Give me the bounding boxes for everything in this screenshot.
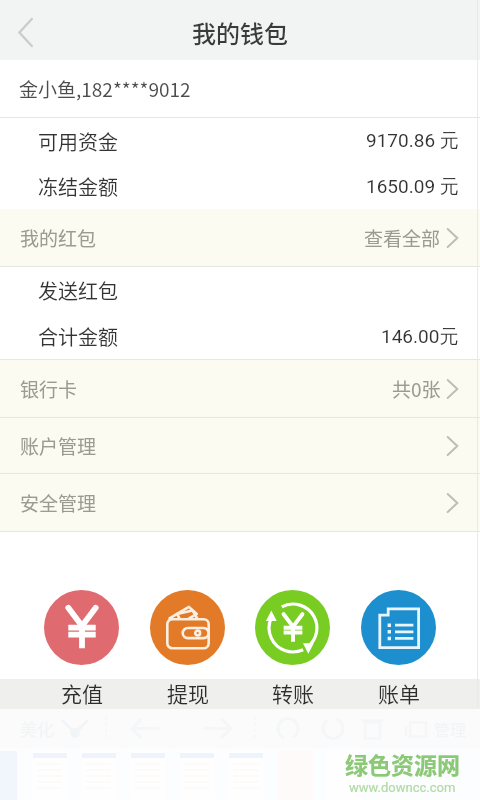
button[interactable]: 冻结金额: [0, 164, 480, 209]
button[interactable]: 合计金额: [0, 313, 480, 360]
button[interactable]: Transfer: [240, 590, 345, 708]
button[interactable]: Bills: [346, 590, 451, 708]
staticText: 146.00元: [381, 325, 459, 349]
button[interactable]: Back: [0, 6, 49, 55]
staticText: 发送红包: [38, 276, 118, 305]
button[interactable]: Recharge: [29, 590, 134, 708]
staticText: 9170.86 元: [366, 129, 459, 153]
staticText: 账单: [378, 678, 420, 708]
button[interactable]: 账户管理: [0, 418, 480, 474]
staticText: 账户管理: [20, 432, 97, 460]
staticText: 查看全部: [364, 224, 441, 252]
staticText: 充值: [61, 678, 103, 708]
staticText: 共0张: [392, 375, 441, 403]
staticText: www.downcc.com: [349, 780, 456, 795]
staticText: 1650.09 元: [366, 175, 459, 199]
staticText: 合计金额: [38, 322, 118, 351]
button[interactable]: 我的红包: [0, 209, 480, 267]
button[interactable]: 安全管理: [0, 474, 480, 532]
button[interactable]: Withdraw: [135, 590, 240, 708]
staticText: 提现: [167, 678, 209, 708]
staticText: 可用资金: [38, 127, 118, 156]
staticText: 金小鱼,182****9012: [19, 75, 191, 103]
staticText: 管理: [434, 717, 467, 740]
staticText: 我的红包: [20, 224, 97, 252]
staticText: 银行卡: [20, 375, 78, 403]
button[interactable]: 可用资金: [0, 118, 480, 164]
staticText: 美化: [20, 716, 54, 741]
button[interactable]: 金小鱼,182****9012: [0, 60, 480, 118]
button[interactable]: 银行卡: [0, 360, 480, 418]
button[interactable]: 发送红包: [0, 267, 480, 313]
staticText: 冻结金额: [38, 172, 118, 201]
staticText: 安全管理: [20, 489, 97, 517]
staticText: 我的钱包: [192, 15, 288, 50]
staticText: 绿色资源网: [345, 747, 460, 780]
staticText: 转账: [272, 678, 314, 708]
